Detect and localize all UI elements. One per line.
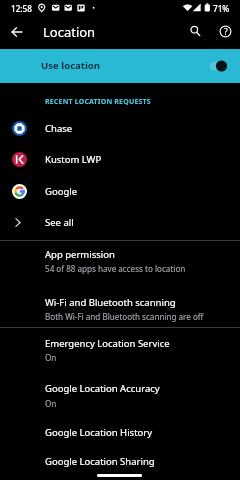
staticText: 12:58 xyxy=(11,3,32,14)
button[interactable]: Google Location History xyxy=(0,418,240,446)
staticText: Both Wi-Fi and Bluetooth scanning are of… xyxy=(45,311,204,322)
button[interactable]: Wi-Fi and Bluetooth scanning xyxy=(0,291,240,327)
staticText: On xyxy=(45,398,57,409)
staticText: Wi-Fi and Bluetooth scanning xyxy=(45,296,176,309)
staticText: 54 of 88 apps have access to location xyxy=(45,263,186,274)
staticText: Google Location Sharing xyxy=(45,455,155,468)
staticText: Google xyxy=(45,185,78,198)
staticText: 71% xyxy=(213,3,230,14)
staticText: Google Location Accuracy xyxy=(45,382,160,395)
staticText: Google Location History xyxy=(45,426,153,439)
button[interactable]: See all xyxy=(0,207,240,238)
staticText: Chase xyxy=(45,122,73,135)
button[interactable]: Kustom LWP xyxy=(0,144,240,175)
staticText: See all xyxy=(45,216,74,229)
button[interactable]: Use location xyxy=(0,49,240,83)
staticText: Kustom LWP xyxy=(45,153,102,166)
staticText: Location xyxy=(43,23,96,41)
staticText: On xyxy=(45,352,57,363)
button[interactable]: Back xyxy=(6,21,28,43)
staticText: RECENT LOCATION REQUESTS xyxy=(45,97,151,107)
button[interactable]: Chase xyxy=(0,113,240,144)
button[interactable]: Search xyxy=(184,20,207,43)
staticText: Use location xyxy=(41,59,101,72)
staticText: Emergency Location Service xyxy=(45,337,170,350)
button[interactable]: App permission xyxy=(0,243,240,279)
staticText: ? xyxy=(224,26,228,38)
button[interactable]: Google xyxy=(0,176,240,207)
button[interactable]: Help xyxy=(214,20,237,43)
button[interactable]: Emergency Location Service xyxy=(0,332,240,368)
button[interactable]: Google Location Sharing xyxy=(0,447,240,475)
staticText: App permission xyxy=(45,248,115,261)
button[interactable]: Google Location Accuracy xyxy=(0,377,240,414)
